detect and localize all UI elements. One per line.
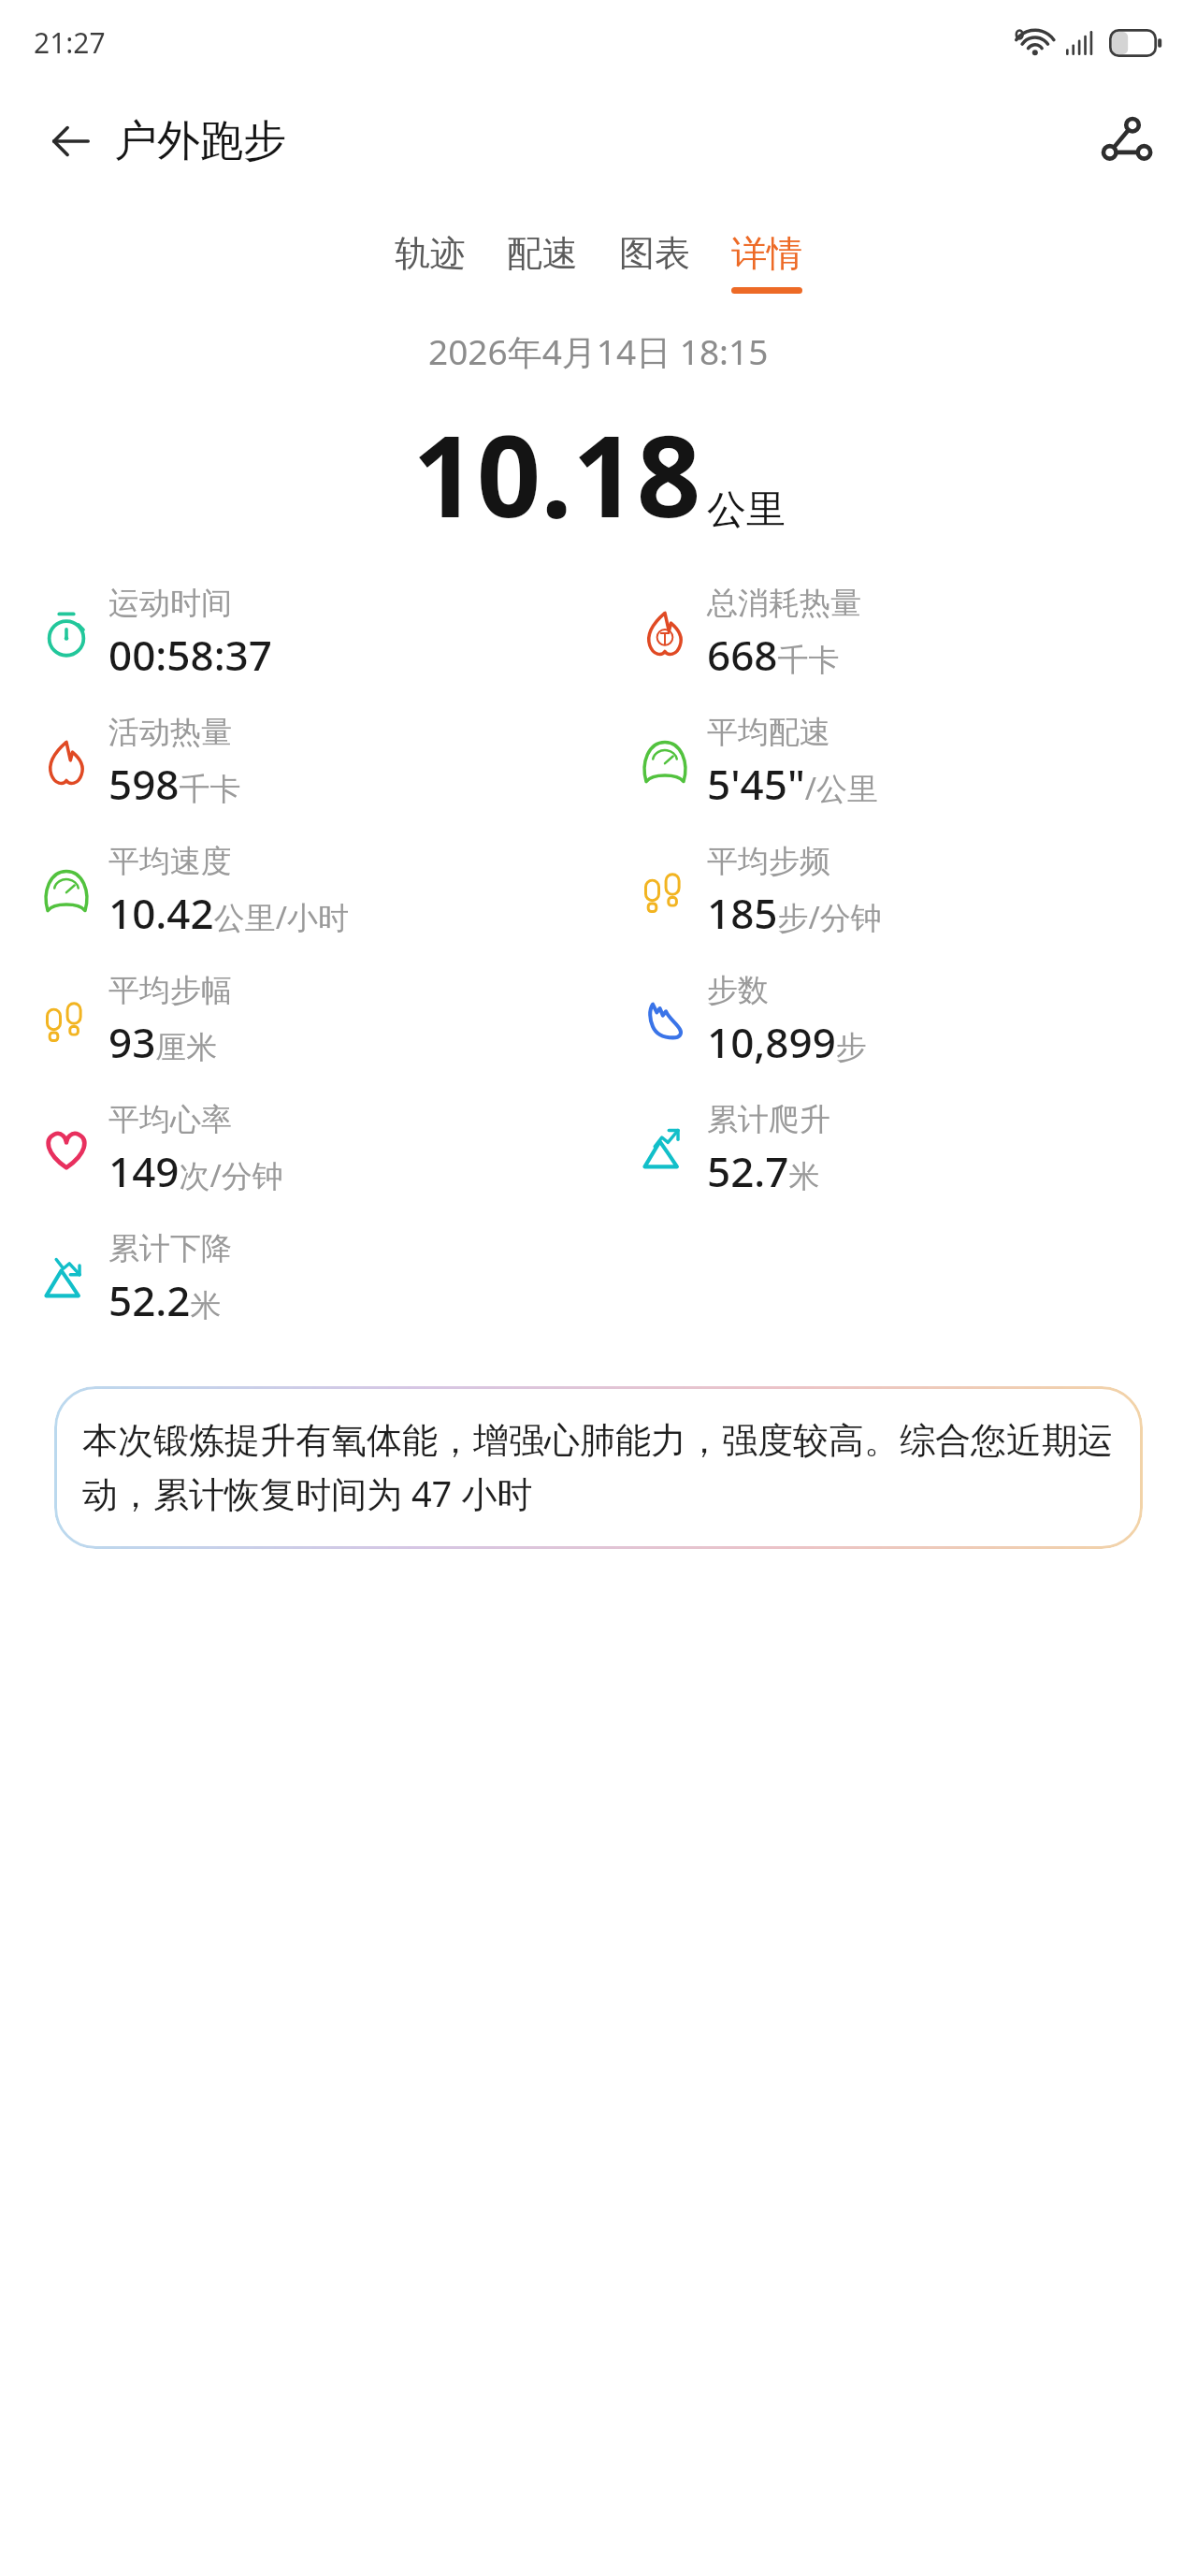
button[interactable]: 运动时间 [0,578,598,688]
staticText: 本次锻炼提升有氧体能，增强心肺能力，强度较高。综合您近期运动，累计恢复时间为 4… [82,1418,1115,1517]
staticText: 5'45"/公里 [707,756,879,812]
button[interactable]: 累计下降 [0,1223,598,1334]
button[interactable]: 累计爬升 [598,1094,1197,1205]
staticText: 598千卡 [108,756,241,812]
staticText: 平均心率 [108,1100,232,1139]
button[interactable]: 分享 [1087,102,1165,181]
staticText: 平均配速 [707,713,830,752]
button[interactable]: 本次锻炼提升有氧体能，增强心肺能力，强度较高。综合您近期运动，累计恢复时间为 4… [54,1386,1143,1549]
staticText: 户外跑步 [114,114,286,168]
button[interactable]: 平均步频 [598,836,1197,947]
staticText: 668千卡 [707,627,840,683]
button[interactable]: 配速 [486,225,598,299]
staticText: 详情 [731,231,802,276]
staticText: 21:27 [34,23,106,62]
staticText: 活动热量 [108,713,232,752]
staticText: 平均步幅 [108,971,232,1010]
staticText: 公里 [707,485,786,535]
staticText: 平均步频 [707,842,830,881]
staticText: 52.7米 [707,1143,820,1199]
button[interactable]: 总消耗热量 [598,578,1197,688]
staticText: 93厘米 [108,1014,218,1070]
staticText: 2026年4月14日 18:15 [428,327,769,375]
staticText: 轨迹 [395,231,466,276]
button[interactable]: 平均步幅 [0,965,598,1076]
staticText: 配速 [507,231,578,276]
staticText: 累计下降 [108,1229,232,1268]
staticText: 52.2米 [108,1272,222,1328]
staticText: 10.42公里/小时 [108,885,349,941]
button[interactable]: 平均心率 [0,1094,598,1205]
staticText: 总消耗热量 [707,584,861,623]
staticText: 149次/分钟 [108,1143,283,1199]
staticText: 累计爬升 [707,1100,830,1139]
button[interactable]: 活动热量 [0,707,598,818]
staticText: 185步/分钟 [707,885,882,941]
button[interactable]: 步数 [598,965,1197,1076]
staticText: 运动时间 [108,584,232,623]
staticText: 10.18 [412,398,701,550]
button[interactable]: 平均配速 [598,707,1197,818]
staticText: 10,899步 [707,1014,867,1070]
staticText: 图表 [619,231,690,276]
button[interactable]: 详情 [711,225,823,299]
button[interactable]: 返回 [34,105,107,178]
button[interactable]: 图表 [598,225,711,299]
button[interactable]: 轨迹 [374,225,486,299]
staticText: 平均速度 [108,842,232,881]
button[interactable]: 平均速度 [0,836,598,947]
staticText: 00:58:37 [108,627,272,683]
staticText: 步数 [707,971,769,1010]
